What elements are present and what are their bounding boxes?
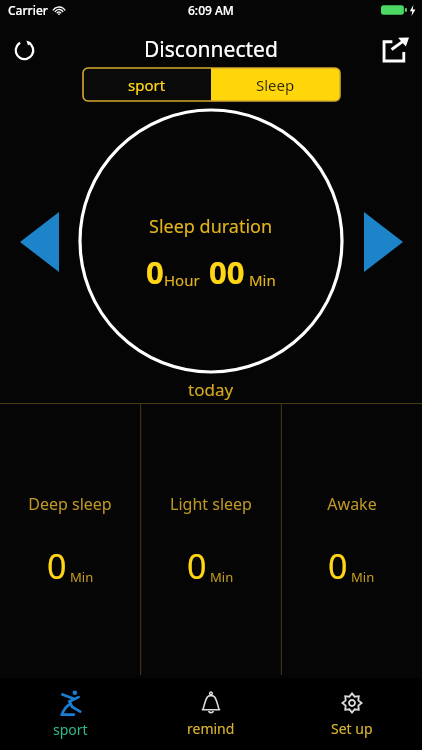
staticText: Deep sleep (28, 493, 112, 515)
staticText: 0 (146, 251, 164, 293)
staticText: Light sleep (170, 493, 252, 515)
staticText: Set up (331, 719, 373, 738)
staticText: sport (53, 720, 88, 739)
staticText: 0 (47, 543, 67, 589)
button[interactable]: Next day (356, 208, 410, 276)
button[interactable]: Share (370, 23, 422, 75)
button[interactable]: Sleep (211, 68, 340, 101)
staticText: 0 (328, 543, 348, 589)
button[interactable]: remind (140, 678, 281, 750)
button[interactable]: Light sleep (140, 403, 281, 675)
button[interactable]: Previous day (12, 208, 66, 276)
staticText: Min (351, 568, 375, 586)
button[interactable]: sport (83, 68, 211, 101)
staticText: remind (187, 719, 235, 738)
staticText: 0 (187, 543, 207, 589)
button[interactable]: Deep sleep (0, 403, 140, 675)
staticText: Sleep duration (149, 214, 273, 239)
staticText: Min (70, 568, 94, 586)
button[interactable]: Refresh (0, 25, 48, 73)
staticText: sport (128, 75, 166, 95)
button[interactable]: Set up (281, 678, 422, 750)
staticText: Min (249, 270, 276, 290)
staticText: Carrier (8, 2, 48, 18)
staticText: Disconnected (144, 35, 278, 64)
staticText: 6:09 AM (188, 2, 234, 18)
staticText: 00 (209, 251, 245, 293)
button[interactable]: sport (0, 678, 140, 750)
staticText: today (188, 378, 234, 401)
staticText: Min (210, 568, 234, 586)
staticText: Hour (164, 270, 200, 290)
button[interactable]: Awake (281, 403, 422, 675)
staticText: Awake (327, 493, 377, 515)
staticText: Sleep (256, 75, 295, 95)
